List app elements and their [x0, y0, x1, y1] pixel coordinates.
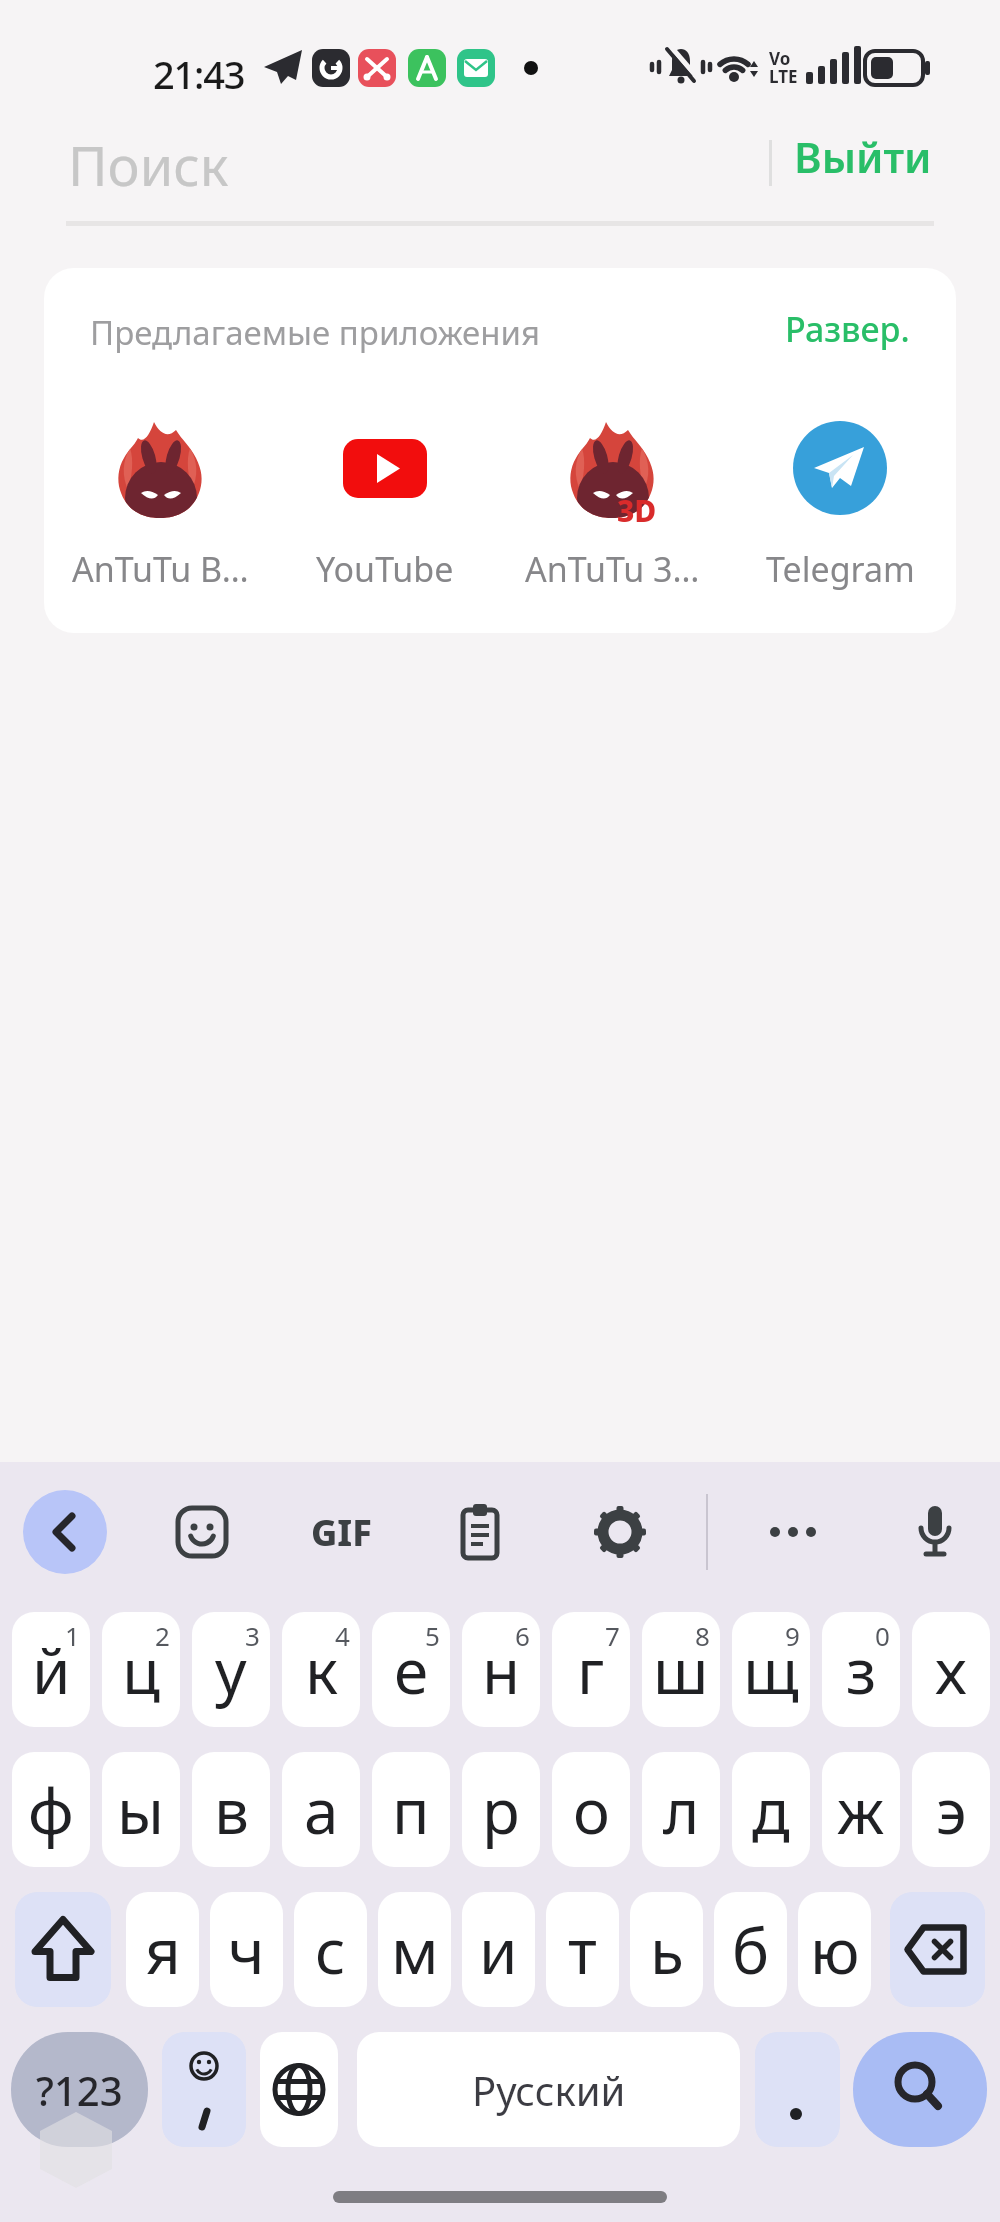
button[interactable]: AnTuTu 3…: [507, 418, 717, 592]
staticText: 0: [875, 1618, 890, 1653]
staticText: 9: [785, 1618, 800, 1653]
staticText: 3D: [617, 490, 657, 531]
staticText: Развер.: [785, 306, 910, 352]
staticText: р: [482, 1768, 520, 1852]
staticText: б: [732, 1908, 770, 1992]
button[interactable]: ш: [642, 1612, 720, 1727]
button[interactable]: ц: [102, 1612, 180, 1727]
button[interactable]: YouTube: [280, 418, 490, 592]
staticText: а: [304, 1768, 339, 1852]
button[interactable]: и: [462, 1892, 535, 2007]
staticText: Vo: [769, 47, 791, 70]
button[interactable]: Выйти: [792, 126, 932, 186]
staticText: в: [214, 1768, 249, 1852]
staticText: г: [577, 1628, 605, 1712]
button[interactable]: AnTuTu B…: [55, 418, 265, 592]
staticText: т: [568, 1908, 597, 1992]
staticText: Поиск: [68, 128, 229, 202]
button[interactable]: м: [378, 1892, 451, 2007]
staticText: LTE: [769, 65, 798, 88]
button[interactable]: ч: [210, 1892, 283, 2007]
staticText: ь: [650, 1908, 684, 1992]
staticText: 4: [335, 1618, 350, 1653]
staticText: 3: [245, 1618, 260, 1653]
staticText: ?123: [36, 2063, 123, 2117]
staticText: с: [315, 1908, 346, 1992]
button[interactable]: э: [912, 1752, 990, 1867]
staticText: AnTuTu 3…: [525, 546, 700, 592]
button[interactable]: н: [462, 1612, 540, 1727]
button[interactable]: е: [372, 1612, 450, 1727]
button[interactable]: б: [714, 1892, 787, 2007]
staticText: YouTube: [316, 546, 454, 592]
staticText: Русский: [472, 2063, 626, 2117]
staticText: 2: [155, 1618, 170, 1653]
button[interactable]: а: [282, 1752, 360, 1867]
button[interactable]: у: [192, 1612, 270, 1727]
button[interactable]: з: [822, 1612, 900, 1727]
button[interactable]: [763, 1502, 823, 1562]
button[interactable]: ь: [630, 1892, 703, 2007]
staticText: 21:43: [153, 48, 245, 100]
button[interactable]: р: [462, 1752, 540, 1867]
staticText: у: [215, 1628, 247, 1712]
staticText: н: [482, 1628, 521, 1712]
button[interactable]: [905, 1502, 965, 1562]
staticText: ф: [28, 1768, 74, 1852]
button[interactable]: [260, 2032, 338, 2147]
staticText: э: [936, 1768, 967, 1852]
button[interactable]: [162, 2032, 246, 2147]
staticText: 1: [65, 1618, 80, 1653]
button[interactable]: ы: [102, 1752, 180, 1867]
button[interactable]: [853, 2032, 987, 2147]
button[interactable]: GIF: [303, 1502, 379, 1562]
staticText: е: [394, 1628, 429, 1712]
button[interactable]: т: [546, 1892, 619, 2007]
button[interactable]: ю: [798, 1892, 871, 2007]
button[interactable]: [172, 1502, 232, 1562]
button[interactable]: [23, 1490, 107, 1574]
button[interactable]: [590, 1502, 650, 1562]
button[interactable]: ж: [822, 1752, 900, 1867]
staticText: GIF: [311, 1508, 372, 1557]
button[interactable]: Развер.: [740, 304, 910, 354]
staticText: AnTuTu B…: [72, 546, 249, 592]
staticText: Telegram: [766, 546, 915, 592]
staticText: ы: [117, 1768, 165, 1852]
button[interactable]: л: [642, 1752, 720, 1867]
button[interactable]: п: [372, 1752, 450, 1867]
button[interactable]: Telegram: [735, 418, 945, 592]
button[interactable]: ф: [12, 1752, 90, 1867]
staticText: о: [573, 1768, 610, 1852]
staticText: 6: [515, 1618, 530, 1653]
button[interactable]: в: [192, 1752, 270, 1867]
button[interactable]: ?123: [11, 2032, 148, 2147]
staticText: 8: [695, 1618, 710, 1653]
button[interactable]: [450, 1502, 510, 1562]
button[interactable]: я: [126, 1892, 199, 2007]
button[interactable]: Поиск: [64, 118, 764, 198]
button[interactable]: [755, 2032, 840, 2147]
staticText: к: [305, 1628, 338, 1712]
button[interactable]: с: [294, 1892, 367, 2007]
button[interactable]: х: [912, 1612, 990, 1727]
staticText: я: [145, 1908, 181, 1992]
button[interactable]: [890, 1892, 985, 2007]
staticText: п: [392, 1768, 430, 1852]
staticText: з: [846, 1628, 877, 1712]
button[interactable]: щ: [732, 1612, 810, 1727]
button[interactable]: й: [12, 1612, 90, 1727]
staticText: ч: [228, 1908, 265, 1992]
button[interactable]: г: [552, 1612, 630, 1727]
staticText: д: [752, 1768, 790, 1852]
button[interactable]: д: [732, 1752, 810, 1867]
button[interactable]: Русский: [357, 2032, 740, 2147]
button[interactable]: к: [282, 1612, 360, 1727]
staticText: ж: [837, 1768, 885, 1852]
button[interactable]: [15, 1892, 111, 2007]
staticText: ц: [122, 1628, 160, 1712]
button[interactable]: о: [552, 1752, 630, 1867]
staticText: Выйти: [794, 128, 932, 185]
staticText: м: [391, 1908, 439, 1992]
staticText: х: [935, 1628, 967, 1712]
